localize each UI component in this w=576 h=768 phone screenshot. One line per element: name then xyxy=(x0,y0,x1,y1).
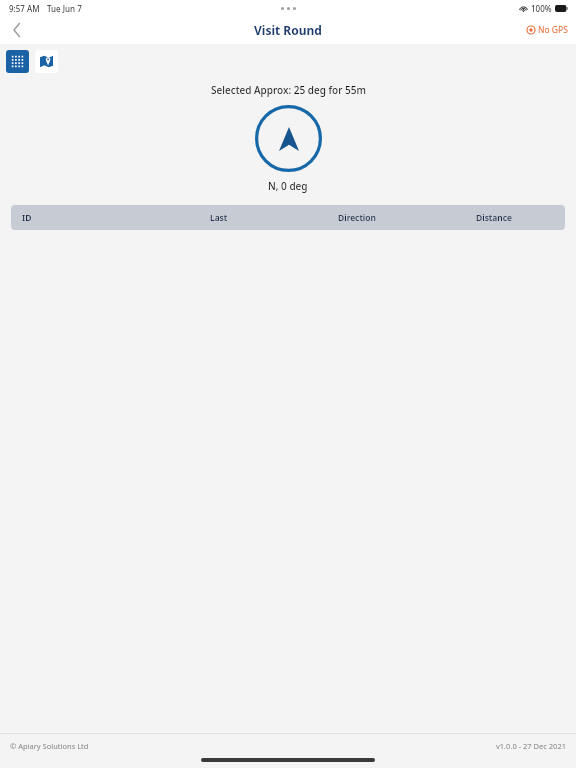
button[interactable]: Compass heading xyxy=(255,105,322,172)
staticText: Direction xyxy=(338,212,376,224)
staticText: 100% xyxy=(531,3,552,14)
staticText: 9:57 AM xyxy=(9,3,40,14)
button[interactable]: ID xyxy=(11,205,565,230)
staticText: No GPS xyxy=(538,24,568,36)
button[interactable]: No GPS xyxy=(527,24,568,36)
staticText: Last xyxy=(210,212,228,224)
staticText: v1.0.0 - 27 Dec 2021 xyxy=(496,741,566,751)
staticText: Tue Jun 7 xyxy=(47,3,82,14)
staticText: © Apiary Solutions Ltd xyxy=(10,741,89,751)
staticText: ID xyxy=(22,212,32,224)
staticText: Distance xyxy=(476,212,512,224)
staticText: Visit Round xyxy=(254,22,322,38)
button[interactable]: Back xyxy=(0,16,34,44)
button[interactable]: Grid view xyxy=(6,50,29,73)
staticText: Selected Approx: 25 deg for 55m xyxy=(211,83,366,97)
button[interactable]: Map view xyxy=(35,50,58,73)
staticText: N, 0 deg xyxy=(268,179,308,193)
